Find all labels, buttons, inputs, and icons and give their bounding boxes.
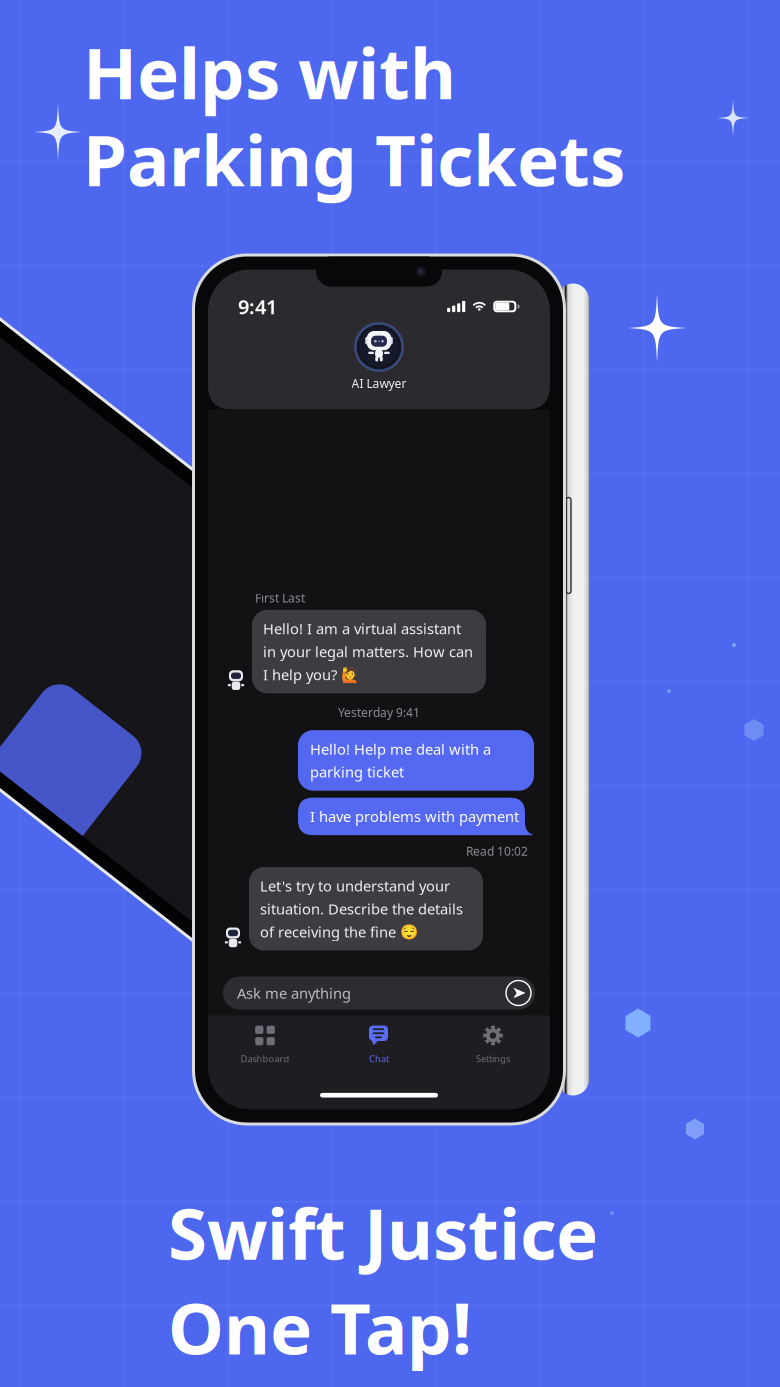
- staticText: Chat: [369, 1052, 389, 1065]
- staticText: Let's try to understand your situation. …: [260, 876, 463, 941]
- staticText: Hello! I am a virtual assistant in your …: [263, 619, 473, 684]
- staticText: One Tap!: [168, 1280, 472, 1374]
- button[interactable]: Chat: [322, 1025, 436, 1065]
- staticText: Helps with: [83, 25, 456, 119]
- staticText: AI Lawyer: [351, 375, 406, 391]
- staticText: Parking Tickets: [83, 112, 625, 206]
- button[interactable]: Dashboard: [208, 1025, 322, 1065]
- staticText: Dashboard: [240, 1052, 289, 1065]
- staticText: Yesterday 9:41: [338, 704, 420, 720]
- staticText: Swift Justice: [168, 1185, 598, 1279]
- button[interactable]: Ask me anything: [208, 976, 550, 1009]
- staticText: Hello! Help me deal with a parking ticke…: [310, 739, 491, 782]
- staticText: 9:41: [238, 293, 277, 320]
- staticText: First Last: [255, 590, 305, 606]
- staticText: I have problems with payment: [310, 807, 519, 826]
- staticText: Read 10:02: [466, 843, 528, 859]
- button[interactable]: Settings: [436, 1025, 550, 1065]
- staticText: Settings: [476, 1052, 510, 1065]
- staticText: Ask me anything: [237, 983, 351, 1003]
